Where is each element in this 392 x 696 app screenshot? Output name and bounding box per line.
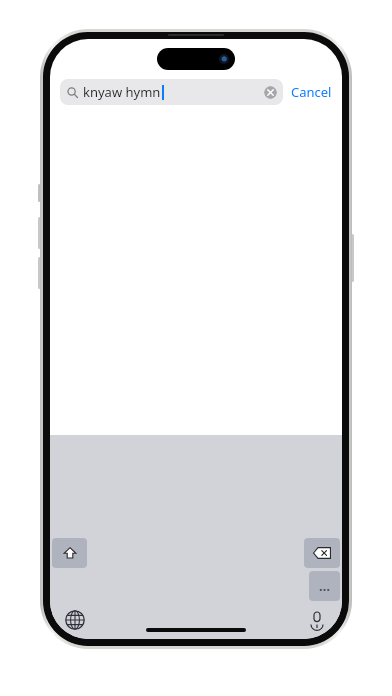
button[interactable]: More [309,571,340,601]
staticText: … [319,577,331,595]
staticText: knyaw hymn [83,83,161,101]
button[interactable]: Change keyboard [62,607,88,633]
button[interactable]: knyaw hymn [60,79,283,105]
button[interactable]: Backspace [304,538,340,568]
button[interactable]: Dictation [304,607,330,633]
button[interactable]: Clear text [264,86,277,99]
staticText: Cancel [291,83,332,101]
button[interactable]: Shift [52,538,87,568]
button[interactable]: Cancel [291,83,332,101]
